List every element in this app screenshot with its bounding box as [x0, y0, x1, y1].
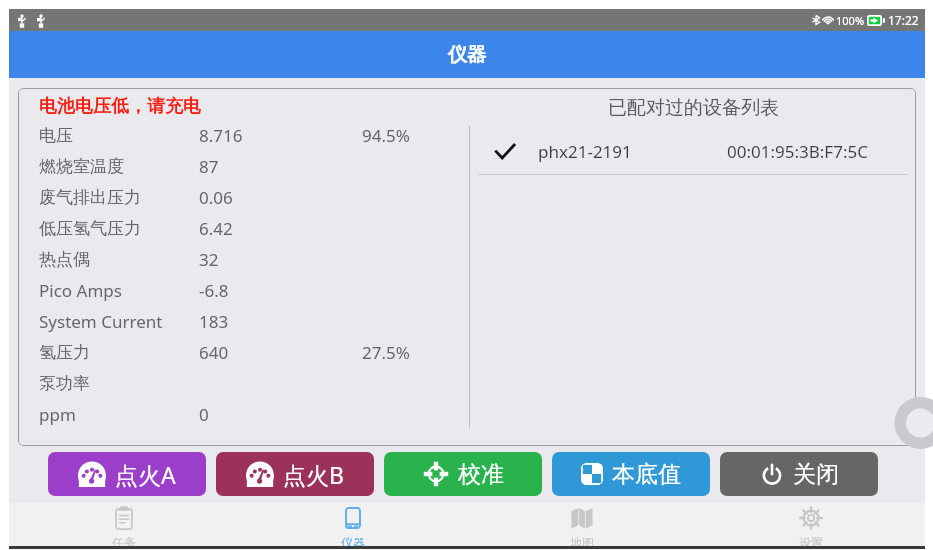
staticText: 8.716 [199, 124, 362, 147]
staticText: 87 [199, 155, 362, 178]
staticText: 32 [199, 248, 362, 271]
staticText: 640 [199, 341, 362, 364]
staticText: 地图 [570, 535, 594, 546]
staticText: 燃烧室温度 [39, 156, 199, 177]
staticText: 设置 [799, 535, 823, 546]
staticText: 94.5% [362, 124, 410, 147]
button[interactable]: 点火A [48, 452, 206, 496]
staticText: 氢压力 [39, 342, 199, 363]
staticText: 任务 [112, 535, 136, 546]
staticText: 183 [199, 310, 362, 333]
staticText: Pico Amps [39, 279, 199, 302]
staticText: 00:01:95:3B:F7:5C [727, 140, 868, 163]
staticText: 电压 [39, 125, 199, 146]
staticText: 校准 [458, 460, 504, 489]
staticText: System Current [39, 310, 199, 333]
staticText: 17:22 [888, 12, 919, 28]
button[interactable]: 设置 [696, 503, 925, 546]
staticText: 27.5% [362, 341, 410, 364]
button[interactable]: 仪器 [238, 503, 467, 546]
button[interactable]: 本底值 [552, 452, 710, 496]
staticText: 0 [199, 403, 362, 426]
staticText: 废气排出压力 [39, 187, 199, 208]
button[interactable]: 点火B [216, 452, 374, 496]
staticText: 泵功率 [39, 373, 199, 394]
staticText: 已配对过的设备列表 [608, 96, 779, 120]
staticText: 点火B [283, 459, 344, 490]
staticText: -6.8 [199, 279, 362, 302]
staticText: 关闭 [793, 460, 839, 489]
staticText: 仪器 [341, 535, 365, 546]
staticText: 电池电压低，请充电 [39, 95, 201, 118]
staticText: 低压氢气压力 [39, 218, 199, 239]
button[interactable]: 关闭 [720, 452, 878, 496]
staticText: 仪器 [448, 43, 486, 67]
staticText: 点火A [115, 459, 176, 490]
staticText: phx21-2191 [538, 140, 632, 163]
staticText: 100% [836, 13, 865, 28]
button[interactable]: 校准 [384, 452, 542, 496]
button[interactable]: 地图 [467, 503, 696, 546]
staticText: 0.06 [199, 186, 362, 209]
staticText: 6.42 [199, 217, 362, 240]
staticText: 本底值 [612, 460, 681, 489]
button[interactable]: 任务 [9, 503, 238, 546]
staticText: ppm [39, 403, 199, 426]
button[interactable]: phx21-2191 [470, 128, 916, 174]
staticText: 热点偶 [39, 249, 199, 270]
